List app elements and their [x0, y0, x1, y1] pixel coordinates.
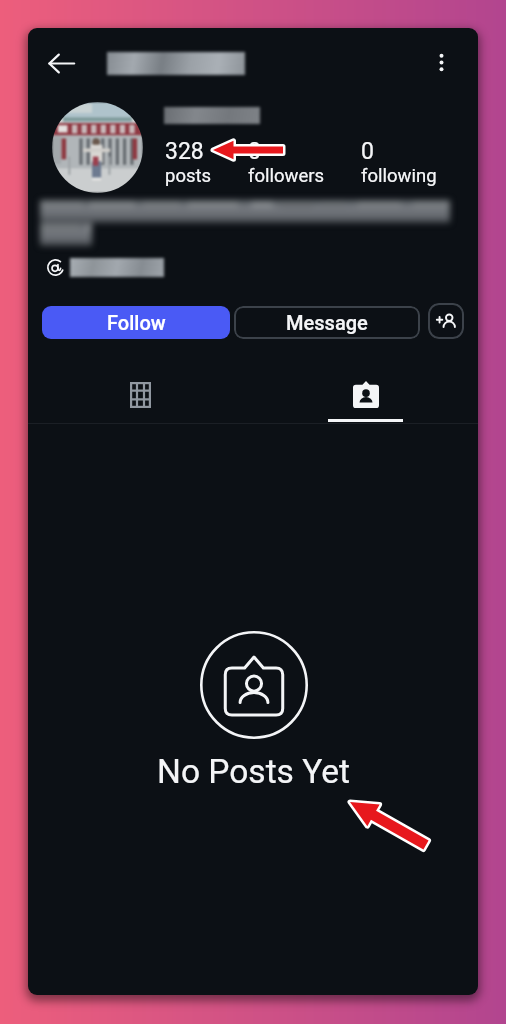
- staticText: Follow: [107, 311, 166, 334]
- button[interactable]: Discover people: [428, 303, 464, 339]
- button[interactable]: More options: [419, 40, 463, 84]
- button[interactable]: 328: [165, 138, 212, 187]
- button[interactable]: Message: [234, 306, 420, 339]
- staticText: 328: [165, 138, 204, 165]
- button[interactable]: 0: [361, 138, 437, 187]
- staticText: followers: [248, 165, 325, 187]
- button[interactable]: Profile photo: [52, 102, 143, 193]
- staticText: 0: [361, 138, 374, 165]
- button[interactable]: Tagged posts: [317, 371, 414, 418]
- staticText: 0: [248, 138, 261, 165]
- staticText: posts: [165, 165, 212, 187]
- button[interactable]: 0: [248, 138, 325, 187]
- button[interactable]: Back: [37, 39, 85, 87]
- staticText: following: [361, 165, 437, 187]
- staticText: Message: [286, 311, 368, 334]
- button[interactable]: Posts grid: [92, 371, 189, 418]
- staticText: No Posts Yet: [157, 752, 350, 791]
- button[interactable]: [47, 258, 164, 277]
- button[interactable]: Follow: [42, 306, 230, 339]
